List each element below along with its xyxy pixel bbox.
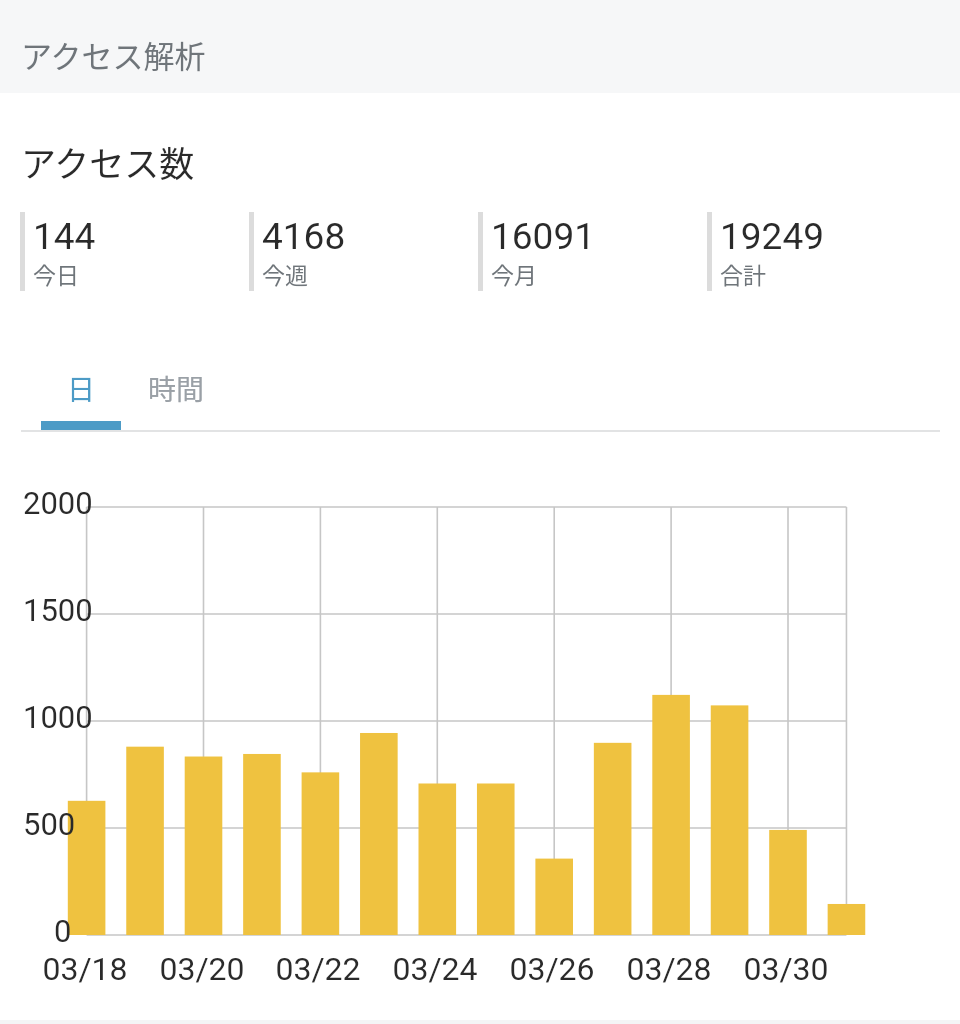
staticText: 1500 (23, 592, 93, 628)
staticText: 500 (23, 806, 76, 842)
staticText: アクセス解析 (21, 32, 206, 77)
staticText: 03/28 (626, 950, 712, 988)
staticText: 19249 (720, 215, 824, 258)
staticText: 03/22 (275, 950, 361, 988)
button[interactable]: 時間 (121, 352, 231, 430)
button[interactable]: 4168 (249, 212, 478, 292)
staticText: 合計 (720, 257, 766, 290)
staticText: 0 (54, 913, 72, 949)
button[interactable]: 16091 (478, 212, 707, 292)
staticText: 03/20 (159, 950, 245, 988)
button[interactable]: アクセス解析 (0, 0, 960, 93)
staticText: 4168 (262, 215, 346, 258)
staticText: 今週 (262, 257, 308, 290)
staticText: アクセス数 (21, 136, 195, 187)
staticText: 16091 (491, 215, 595, 258)
other: Daily access bar chart (0, 445, 960, 1024)
staticText: 03/18 (42, 950, 128, 988)
button[interactable]: 144 (20, 212, 249, 292)
staticText: 1000 (23, 699, 93, 735)
button[interactable]: 日 (41, 352, 121, 430)
staticText: 今日 (33, 257, 79, 290)
staticText: 日 (67, 368, 96, 409)
staticText: 03/30 (743, 950, 829, 988)
staticText: 03/24 (392, 950, 478, 988)
staticText: 2000 (23, 485, 93, 521)
staticText: 時間 (148, 368, 205, 409)
staticText: 03/26 (509, 950, 595, 988)
staticText: 今月 (491, 257, 537, 290)
staticText: 144 (33, 215, 96, 258)
button[interactable]: 19249 (707, 212, 936, 292)
